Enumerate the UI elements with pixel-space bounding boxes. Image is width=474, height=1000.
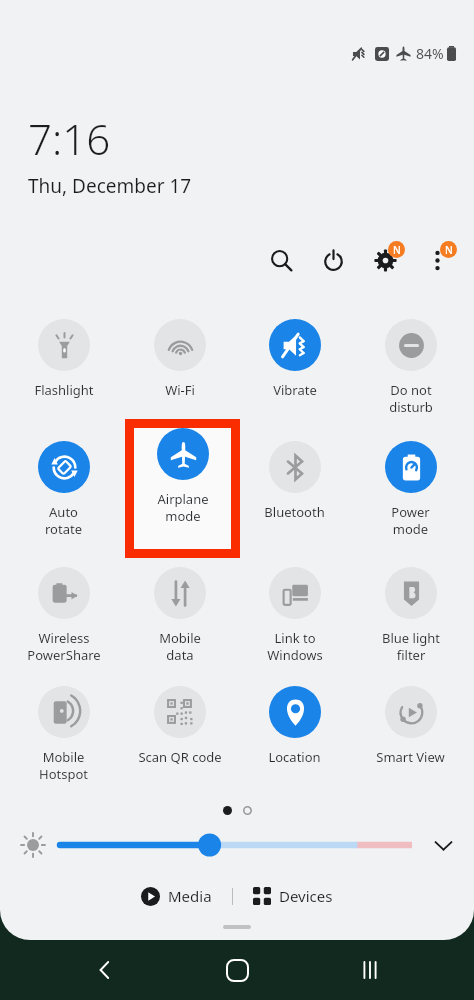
staticText: Wireless PowerShare: [27, 629, 101, 664]
staticText: Scan QR code: [138, 748, 222, 766]
button[interactable]: Wireless PowerShare: [16, 567, 111, 664]
button[interactable]: Back: [77, 942, 133, 998]
staticText: Media: [168, 886, 212, 906]
button[interactable]: Airplane mode: [134, 428, 231, 549]
staticText: Airplane mode: [157, 490, 209, 525]
button[interactable]: Mobile data: [132, 567, 227, 664]
button[interactable]: Blue light filter: [363, 567, 458, 664]
staticText: Mobile Hotspot: [39, 748, 88, 783]
button[interactable]: Airplane mode: [132, 441, 227, 538]
button[interactable]: Location: [247, 686, 342, 766]
staticText: N: [393, 243, 401, 257]
button[interactable]: Do not disturb: [363, 319, 458, 416]
button[interactable]: Mobile Hotspot: [16, 686, 111, 783]
button[interactable]: Scan QR code: [132, 686, 227, 766]
button[interactable]: Auto rotate: [16, 441, 111, 538]
button[interactable]: [60, 833, 412, 857]
button[interactable]: Expand brightness options: [426, 828, 460, 862]
button[interactable]: Power mode: [363, 441, 458, 538]
button[interactable]: Vibrate: [247, 319, 342, 399]
button[interactable]: Search: [264, 243, 298, 277]
button[interactable]: Smart View: [363, 686, 458, 766]
button[interactable]: More options: [420, 243, 454, 277]
button[interactable]: Media: [135, 882, 218, 910]
staticText: 7:16: [28, 110, 111, 167]
staticText: Link to Windows: [267, 629, 323, 664]
staticText: N: [445, 243, 453, 257]
button[interactable]: Bluetooth: [247, 441, 342, 521]
staticText: Flashlight: [34, 381, 94, 399]
staticText: Wi-Fi: [165, 381, 195, 399]
button[interactable]: Link to Windows: [247, 567, 342, 664]
button[interactable]: Flashlight: [16, 319, 111, 399]
button[interactable]: Settings: [368, 243, 402, 277]
staticText: Smart View: [376, 748, 445, 766]
staticText: Thu, December 17: [28, 173, 192, 199]
button[interactable]: Power: [316, 243, 350, 277]
button[interactable]: Wi-Fi: [132, 319, 227, 399]
staticText: Blue light filter: [382, 629, 440, 664]
staticText: Auto rotate: [45, 503, 82, 538]
staticText: Location: [268, 748, 321, 766]
staticText: Airplane mode: [154, 503, 206, 538]
button[interactable]: Devices: [247, 882, 339, 910]
staticText: Power mode: [391, 503, 430, 538]
staticText: Vibrate: [273, 381, 317, 399]
staticText: Bluetooth: [264, 503, 325, 521]
staticText: Do not disturb: [389, 381, 433, 416]
staticText: Devices: [279, 886, 333, 906]
staticText: 84%: [416, 44, 444, 63]
button[interactable]: Recent apps: [342, 942, 398, 998]
button[interactable]: Home: [209, 942, 265, 998]
staticText: Mobile data: [159, 629, 201, 664]
